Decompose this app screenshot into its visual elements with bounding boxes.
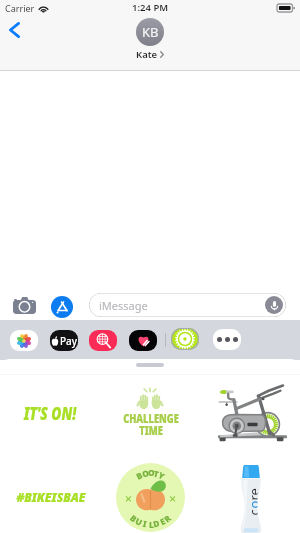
staticText: Carrier: [5, 2, 35, 14]
button[interactable]: KB: [136, 18, 164, 61]
button[interactable]: Back: [1, 16, 27, 44]
staticText: KB: [142, 23, 159, 41]
button[interactable]: Photos: [10, 330, 38, 351]
button[interactable]: It's on sticker: [0, 376, 100, 454]
button[interactable]: Bike is bae sticker: [0, 454, 100, 533]
staticText: re: [244, 487, 257, 500]
button[interactable]: App Store: [48, 293, 76, 321]
staticText: O: [148, 467, 155, 478]
button[interactable]: Water bottle sticker: [200, 454, 300, 533]
button[interactable]: Spin sticker pack: [171, 328, 199, 350]
staticText: IT'S ON!: [23, 401, 77, 425]
staticText: B: [134, 469, 144, 482]
button[interactable]: Apple Pay: [50, 330, 78, 351]
staticText: E: [158, 515, 167, 527]
staticText: CHALLENGE: [123, 409, 179, 427]
button[interactable]: Dictate: [265, 296, 283, 314]
button[interactable]: Digital Touch: [129, 330, 157, 351]
staticText: O: [141, 467, 150, 479]
staticText: T: [153, 468, 160, 480]
staticText: c: [244, 508, 257, 515]
staticText: D: [152, 517, 161, 529]
button[interactable]: Challenge time sticker: [100, 376, 200, 454]
staticText: o: [244, 500, 257, 508]
button[interactable]: iMessage: [89, 293, 286, 317]
staticText: U: [134, 515, 145, 528]
staticText: Y: [157, 469, 167, 482]
staticText: B: [128, 512, 139, 524]
staticText: iMessage: [99, 298, 148, 313]
staticText: 1:24 PM: [132, 1, 169, 14]
button[interactable]: Booty builder sticker: [100, 454, 200, 533]
staticText: Kate: [136, 48, 158, 61]
button[interactable]: More apps: [213, 329, 241, 350]
staticText: Pay: [60, 334, 78, 348]
staticText: R: [161, 512, 173, 524]
button[interactable]: Camera: [8, 292, 40, 318]
staticText: I: [142, 518, 148, 529]
staticText: TIME: [139, 421, 163, 439]
staticText: L: [149, 519, 154, 530]
staticText: #BIKEISBAE: [16, 488, 86, 506]
button[interactable]: Spin bike sticker: [200, 376, 300, 454]
button[interactable]: Image search: [89, 330, 117, 351]
